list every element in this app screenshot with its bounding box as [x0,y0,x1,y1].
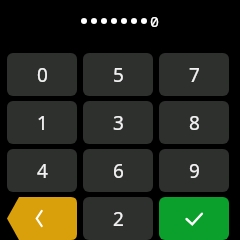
button[interactable]: 2 [83,197,153,240]
button[interactable]: 5 [83,53,153,96]
staticText: 2 [113,206,124,232]
button[interactable]: Confirm [159,197,229,240]
staticText: 8 [189,110,200,136]
staticText: 5 [113,62,124,88]
staticText: 7 [189,62,200,88]
button[interactable]: 9 [159,149,229,192]
staticText: 9 [189,158,200,184]
staticText: 0 [37,62,48,88]
button[interactable]: 1 [7,101,77,144]
button[interactable]: 4 [7,149,77,192]
staticText: 0 [150,11,160,31]
staticText: 1 [37,110,48,136]
staticText: 3 [113,110,124,136]
button[interactable]: 0 [7,53,77,96]
button[interactable]: 8 [159,101,229,144]
button[interactable]: 7 [159,53,229,96]
button[interactable]: Back [7,197,77,240]
staticText: 4 [37,158,48,184]
staticText: 6 [113,158,124,184]
button[interactable]: 3 [83,101,153,144]
button[interactable]: 6 [83,149,153,192]
